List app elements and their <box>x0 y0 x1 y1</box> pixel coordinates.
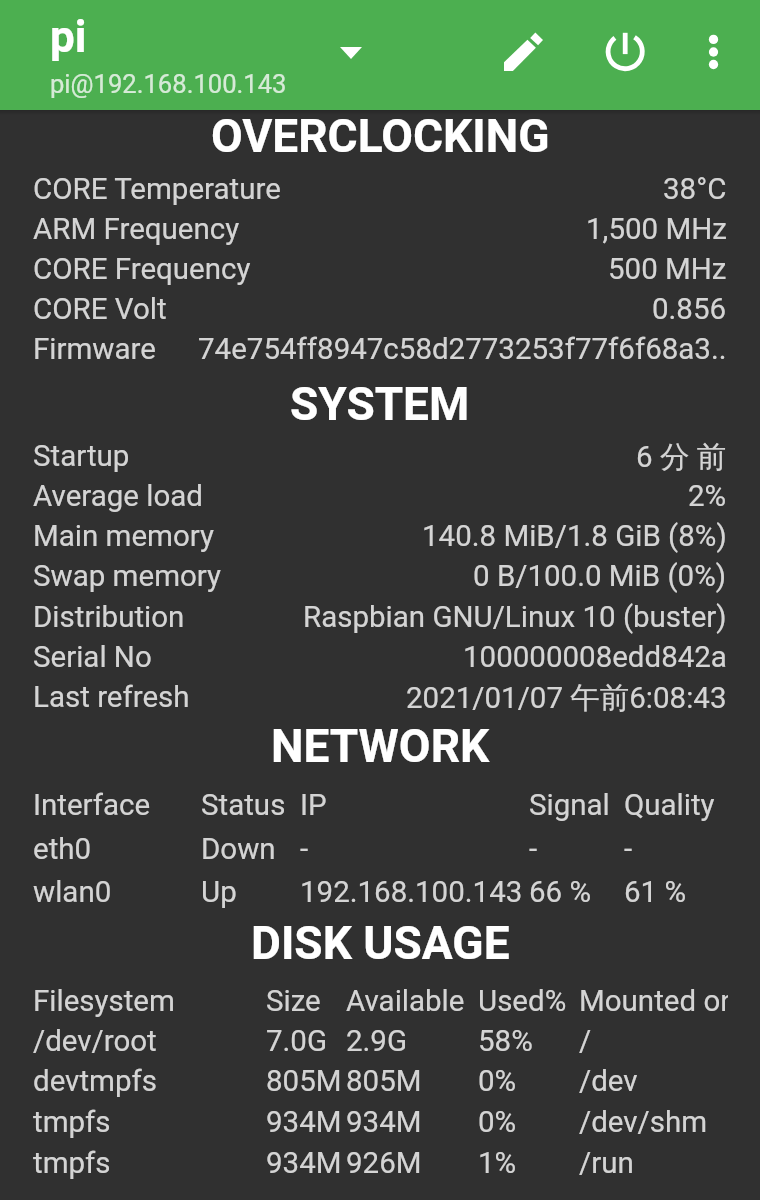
staticText: devtmpfs <box>33 1064 157 1099</box>
staticText: 1,500 MHz <box>586 212 727 247</box>
staticText: NETWORK <box>271 719 490 769</box>
staticText: 0% <box>478 1064 517 1099</box>
button[interactable]: pi <box>30 4 340 106</box>
staticText: Mounted on <box>579 984 728 1019</box>
staticText: 2.9G <box>346 1024 408 1059</box>
staticText: tmpfs <box>33 1146 111 1181</box>
staticText: Distribution <box>33 600 185 635</box>
staticText: 0 B/100.0 MiB (0%) <box>473 559 727 594</box>
staticText: 74e754ff8947c58d2773253f77f6f68a3.. <box>198 332 727 367</box>
staticText: /dev/shm <box>579 1105 708 1140</box>
staticText: 500 MHz <box>608 252 727 287</box>
staticText: Up <box>201 875 237 910</box>
staticText: 934M <box>266 1105 342 1140</box>
staticText: wlan0 <box>33 875 112 910</box>
staticText: - <box>624 832 633 867</box>
staticText: Swap memory <box>33 559 222 594</box>
staticText: DISK USAGE <box>251 916 510 966</box>
staticText: / <box>579 1024 592 1059</box>
staticText: 2021/01/07 午前6:08:43 <box>406 680 727 717</box>
staticText: 0.856 <box>652 292 727 327</box>
staticText: Last refresh <box>33 680 190 715</box>
staticText: - <box>300 832 309 867</box>
staticText: 192.168.100.143 <box>300 875 523 910</box>
staticText: 805M <box>346 1064 422 1099</box>
staticText: 66 % <box>529 875 592 910</box>
staticText: Available <box>346 984 465 1019</box>
staticText: IP <box>300 788 327 823</box>
staticText: Status <box>201 788 286 823</box>
staticText: CORE Temperature <box>33 172 281 207</box>
staticText: Down <box>201 832 276 867</box>
staticText: 140.8 MiB/1.8 GiB (8%) <box>422 519 727 554</box>
staticText: SYSTEM <box>290 377 470 427</box>
staticText: OVERCLOCKING <box>211 109 550 159</box>
staticText: Size <box>266 984 321 1019</box>
staticText: 58% <box>478 1024 533 1059</box>
staticText: pi <box>50 11 87 63</box>
staticText: Main memory <box>33 519 215 554</box>
staticText: 1% <box>478 1146 517 1181</box>
staticText: 934M <box>266 1146 342 1181</box>
staticText: /dev/root <box>33 1024 157 1059</box>
staticText: Signal <box>529 788 610 823</box>
staticText: - <box>529 832 538 867</box>
staticText: Raspbian GNU/Linux 10 (buster) <box>303 600 727 635</box>
staticText: 0% <box>478 1105 517 1140</box>
staticText: 805M <box>266 1064 342 1099</box>
button[interactable]: Edit <box>487 16 559 88</box>
staticText: Average load <box>33 479 203 514</box>
staticText: /run <box>579 1146 634 1181</box>
staticText: CORE Volt <box>33 292 167 327</box>
staticText: Interface <box>33 788 151 823</box>
staticText: 2% <box>688 479 727 514</box>
staticText: tmpfs <box>33 1105 111 1140</box>
staticText: Firmware <box>33 332 156 367</box>
staticText: 100000008edd842a <box>463 640 727 675</box>
staticText: 926M <box>346 1146 422 1181</box>
staticText: Serial No <box>33 640 152 675</box>
button[interactable]: Power <box>589 16 661 88</box>
staticText: 934M <box>346 1105 422 1140</box>
staticText: Quality <box>624 788 715 823</box>
button[interactable]: More options <box>677 16 749 88</box>
other: Select device <box>327 29 375 77</box>
staticText: 6 分 前 <box>636 439 727 476</box>
staticText: Used% <box>478 984 567 1019</box>
staticText: 7.0G <box>266 1024 328 1059</box>
staticText: Filesystem <box>33 984 175 1019</box>
staticText: 38°C <box>663 172 727 207</box>
staticText: Startup <box>33 439 130 474</box>
staticText: ARM Frequency <box>33 212 240 247</box>
staticText: CORE Frequency <box>33 252 251 287</box>
staticText: eth0 <box>33 832 92 867</box>
staticText: 61 % <box>624 875 687 910</box>
staticText: pi@192.168.100.143 <box>50 69 287 99</box>
staticText: /dev <box>579 1064 638 1099</box>
